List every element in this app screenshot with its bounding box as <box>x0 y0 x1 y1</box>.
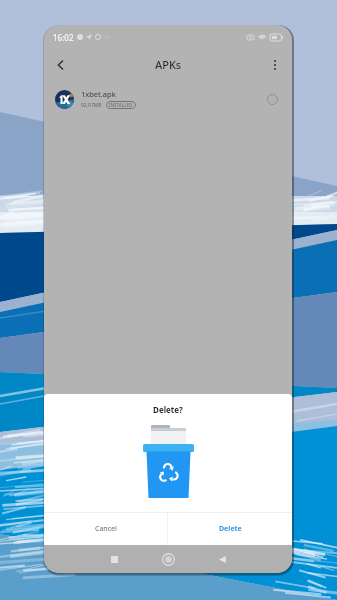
button[interactable]: Cancel <box>44 513 167 545</box>
button[interactable]: Home <box>157 548 179 570</box>
staticText: INSTALLED <box>109 102 133 108</box>
button[interactable]: Back <box>49 53 73 77</box>
staticText: 1xbet.apk <box>81 89 116 99</box>
staticText: 92.97MB <box>81 102 102 109</box>
button[interactable]: Delete <box>168 513 292 545</box>
button[interactable]: Back <box>211 548 233 570</box>
button[interactable]: More options <box>263 53 287 77</box>
staticText: Delete? <box>44 404 292 415</box>
staticText: Delete <box>219 524 242 534</box>
button[interactable]: Recent apps <box>103 548 125 570</box>
staticText: Cancel <box>95 524 117 534</box>
button[interactable]: 1xbet.apk <box>44 84 292 114</box>
staticText: APKs <box>155 57 182 72</box>
button[interactable]: Select item <box>263 90 281 108</box>
staticText: 16:02 <box>53 32 74 43</box>
